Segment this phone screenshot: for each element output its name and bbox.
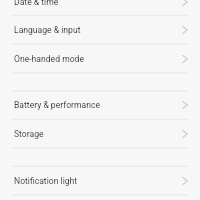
staticText: Language & input [14,25,178,35]
staticText: Storage [14,129,178,139]
staticText: Notification light [14,176,178,186]
other: Open [178,52,192,66]
button[interactable]: One-handed mode [0,44,200,73]
other: Open [178,174,192,188]
other: Open [178,127,192,141]
staticText: Battery & performance [14,100,178,110]
other: Open [178,0,192,9]
other: Open [178,98,192,112]
button[interactable]: Date & time [0,0,200,16]
button[interactable]: Language & input [0,15,200,44]
button[interactable]: Battery & performance [0,90,200,119]
button[interactable]: Storage [0,119,200,148]
other: Open [178,23,192,37]
button[interactable]: Notification light [0,166,200,195]
staticText: One-handed mode [14,54,178,64]
staticText: Date & time [14,0,178,7]
